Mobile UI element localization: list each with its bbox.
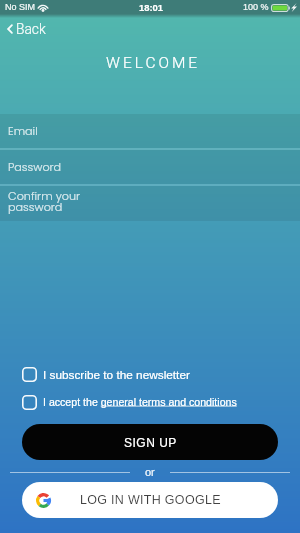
staticText: Back bbox=[16, 21, 46, 37]
staticText: I subscribe to the newsletter bbox=[43, 368, 190, 381]
staticText: 100 % bbox=[243, 2, 269, 12]
staticText: or bbox=[145, 466, 155, 478]
staticText: 18:01 bbox=[139, 2, 164, 13]
button[interactable]: Back bbox=[0, 19, 54, 39]
button[interactable]: I accept the general terms and condition… bbox=[0, 394, 300, 410]
staticText: Email bbox=[8, 123, 38, 139]
button[interactable]: Password bbox=[0, 150, 300, 184]
button[interactable]: I subscribe to the newsletter bbox=[0, 366, 300, 382]
staticText: Confirm your password bbox=[8, 188, 81, 215]
button[interactable]: SIGN UP bbox=[22, 424, 278, 460]
button[interactable]: Confirm your password bbox=[0, 186, 300, 221]
staticText: No SIM bbox=[5, 2, 36, 12]
button[interactable]: LOG IN WITH GOOGLE bbox=[22, 482, 278, 518]
staticText: SIGN UP bbox=[124, 436, 177, 449]
staticText: LOG IN WITH GOOGLE bbox=[80, 493, 221, 507]
staticText: I accept the general terms and condition… bbox=[43, 396, 237, 408]
other: I subscribe to the newsletter bbox=[22, 367, 37, 382]
button[interactable]: Email bbox=[0, 114, 300, 148]
staticText: Password bbox=[8, 159, 62, 175]
staticText: WELCOME bbox=[106, 54, 201, 72]
other: I accept the general terms and condition… bbox=[22, 395, 37, 410]
